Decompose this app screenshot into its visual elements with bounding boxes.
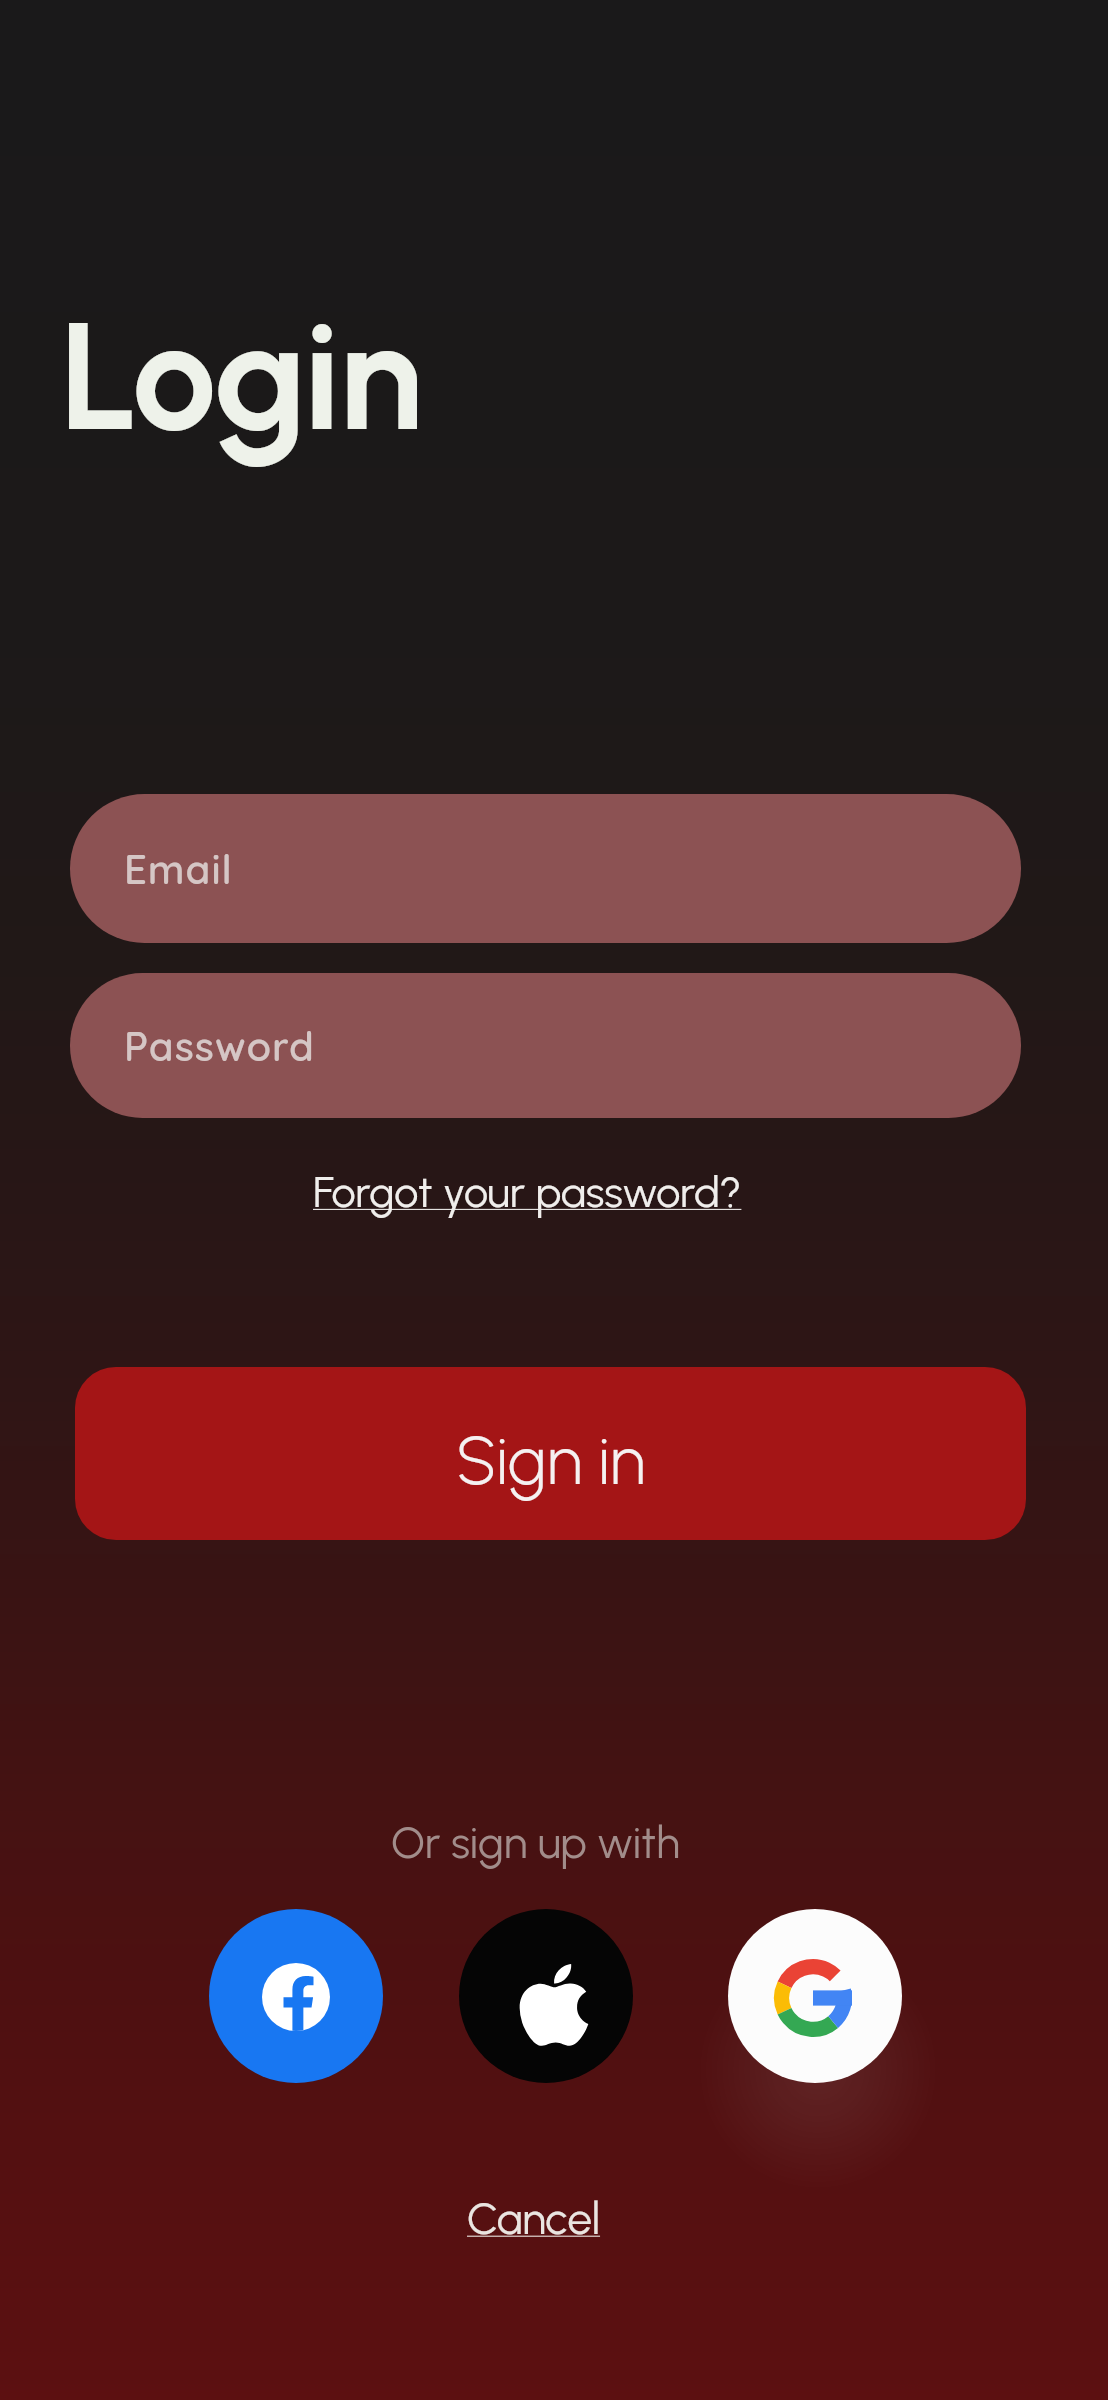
staticText: Login [60, 286, 422, 467]
button[interactable] [459, 1909, 633, 2083]
staticText: Or sign up with [391, 1816, 680, 1869]
button[interactable] [209, 1909, 383, 2083]
button[interactable]: Email [70, 794, 1021, 943]
staticText: Email [124, 844, 233, 894]
button[interactable]: Sign in [75, 1367, 1026, 1540]
staticText: Password [124, 1021, 315, 1071]
button[interactable]: Cancel [467, 2192, 601, 2245]
button[interactable] [728, 1909, 902, 2083]
staticText: Sign in [456, 1420, 646, 1500]
button[interactable]: Password [70, 973, 1021, 1118]
button[interactable]: Forgot your password? [313, 1166, 742, 1218]
